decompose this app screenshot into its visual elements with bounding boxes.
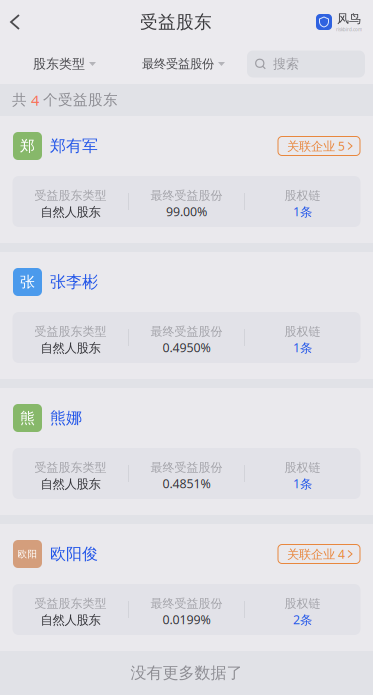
button[interactable]: 最终受益股份 xyxy=(108,44,225,84)
staticText: 共 xyxy=(12,91,31,109)
button[interactable]: 欧阳 xyxy=(0,540,98,568)
staticText: 张 xyxy=(20,273,35,291)
staticText: 搜索 xyxy=(273,56,299,72)
button[interactable]: 郑 xyxy=(0,132,98,160)
staticText: 股权链 xyxy=(284,460,320,475)
staticText: 4 xyxy=(31,90,39,110)
staticText: 自然人股东 xyxy=(40,204,100,220)
staticText: 欧阳俊 xyxy=(50,544,98,564)
staticText: 1条 xyxy=(293,475,312,492)
staticText: 最终受益股份 xyxy=(150,596,222,611)
staticText: 0.4851% xyxy=(162,475,210,492)
staticText: 受益股东 xyxy=(140,11,212,33)
button[interactable]: 关联企业 5 xyxy=(278,136,360,155)
staticText: 2条 xyxy=(293,611,312,628)
staticText: 1条 xyxy=(293,203,312,220)
staticText: 风鸟 xyxy=(337,11,361,26)
staticText: 个受益股东 xyxy=(39,91,118,109)
staticText: 99.00% xyxy=(166,203,207,220)
staticText: 没有更多数据了 xyxy=(130,663,242,683)
staticText: 张李彬 xyxy=(50,272,98,292)
staticText: 最终受益股份 xyxy=(150,460,222,475)
staticText: 自然人股东 xyxy=(40,612,100,628)
staticText: 关联企业 4 xyxy=(287,546,345,562)
staticText: 郑 xyxy=(20,137,35,155)
button[interactable]: 返回 xyxy=(0,0,30,44)
staticText: 自然人股东 xyxy=(40,340,100,356)
staticText: 关联企业 5 xyxy=(287,138,345,154)
button[interactable]: 股东类型 xyxy=(0,44,108,84)
staticText: 受益股东类型 xyxy=(34,324,106,339)
staticText: 最终受益股份 xyxy=(150,324,222,339)
staticText: 股东类型 xyxy=(33,56,85,72)
staticText: 欧阳 xyxy=(17,548,37,560)
button[interactable]: 张 xyxy=(0,268,98,296)
staticText: 股权链 xyxy=(284,324,320,339)
staticText: 最终受益股份 xyxy=(142,56,214,72)
staticText: 1条 xyxy=(293,339,312,356)
staticText: 郑有军 xyxy=(50,136,98,156)
staticText: 熊 xyxy=(20,409,35,427)
staticText: 自然人股东 xyxy=(40,476,100,492)
button[interactable]: 关联企业 4 xyxy=(278,544,360,563)
staticText: 0.0199% xyxy=(162,611,210,628)
staticText: 熊娜 xyxy=(50,408,82,428)
staticText: 受益股东类型 xyxy=(34,188,106,203)
button[interactable]: 风鸟 riskbird.com xyxy=(316,0,373,44)
staticText: 股权链 xyxy=(284,596,320,611)
button[interactable]: 熊 xyxy=(0,404,82,432)
staticText: 最终受益股份 xyxy=(150,188,222,203)
staticText: 0.4950% xyxy=(162,339,210,356)
staticText: 受益股东类型 xyxy=(34,460,106,475)
button[interactable]: 搜索 xyxy=(247,50,365,77)
staticText: 股权链 xyxy=(284,188,320,203)
staticText: riskbird.com xyxy=(336,26,362,33)
staticText: 受益股东类型 xyxy=(34,596,106,611)
